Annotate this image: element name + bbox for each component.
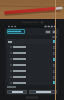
button[interactable]: Select Chapter 1 — [7, 44, 57, 50]
button[interactable]: Options — [52, 30, 57, 34]
button[interactable]: Select Chapter 1 — [53, 46, 56, 49]
button[interactable]: Select Chapter 7 — [7, 80, 57, 85]
button[interactable]: Cancel — [7, 90, 27, 94]
button[interactable]: Sort — [52, 36, 57, 38]
button[interactable]: Select Chapter 3 — [53, 58, 56, 61]
button[interactable]: Select Chapter 4 — [53, 64, 56, 67]
button[interactable]: Select Chapter 5 — [53, 70, 56, 73]
button[interactable]: Select Chapter 6 — [53, 76, 56, 79]
button[interactable]: Select all — [45, 30, 51, 34]
button[interactable]: Select Chapter 3 — [7, 56, 57, 62]
button[interactable] — [7, 29, 25, 34]
button[interactable]: Select Chapter 7 — [53, 81, 56, 84]
button[interactable]: Select All — [7, 39, 57, 44]
button[interactable]: Select Chapter 5 — [7, 68, 57, 74]
button[interactable]: Select All — [53, 40, 56, 43]
button[interactable]: Select Chapter 2 — [7, 50, 57, 56]
button[interactable]: Download — [29, 90, 57, 94]
button[interactable]: Select Chapter 4 — [7, 62, 57, 68]
button[interactable]: Select Chapter 2 — [53, 52, 56, 55]
button[interactable]: Select Chapter 6 — [7, 74, 57, 80]
